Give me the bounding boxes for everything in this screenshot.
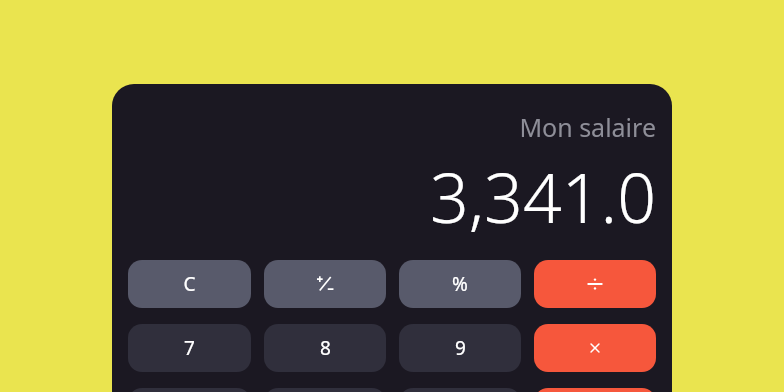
button[interactable]: 9 (399, 324, 521, 372)
button[interactable]: Divide (534, 260, 656, 308)
staticText: 7 (184, 335, 195, 361)
staticText: 8 (320, 335, 331, 361)
button[interactable]: % (399, 260, 521, 308)
staticText: 9 (455, 335, 466, 361)
button[interactable]: Plus minus (264, 260, 386, 308)
button[interactable]: Subtract (534, 388, 656, 392)
staticText: % (452, 271, 468, 297)
button[interactable]: 5 (264, 388, 386, 392)
staticText: C (183, 271, 196, 297)
button[interactable]: Multiply (534, 324, 656, 372)
button[interactable]: C (128, 260, 251, 308)
button[interactable]: 8 (264, 324, 386, 372)
staticText: 3,341.0 (429, 150, 656, 243)
staticText: Mon salaire (519, 110, 656, 144)
button[interactable]: 7 (128, 324, 251, 372)
button[interactable]: 4 (128, 388, 251, 392)
button[interactable]: 6 (399, 388, 521, 392)
